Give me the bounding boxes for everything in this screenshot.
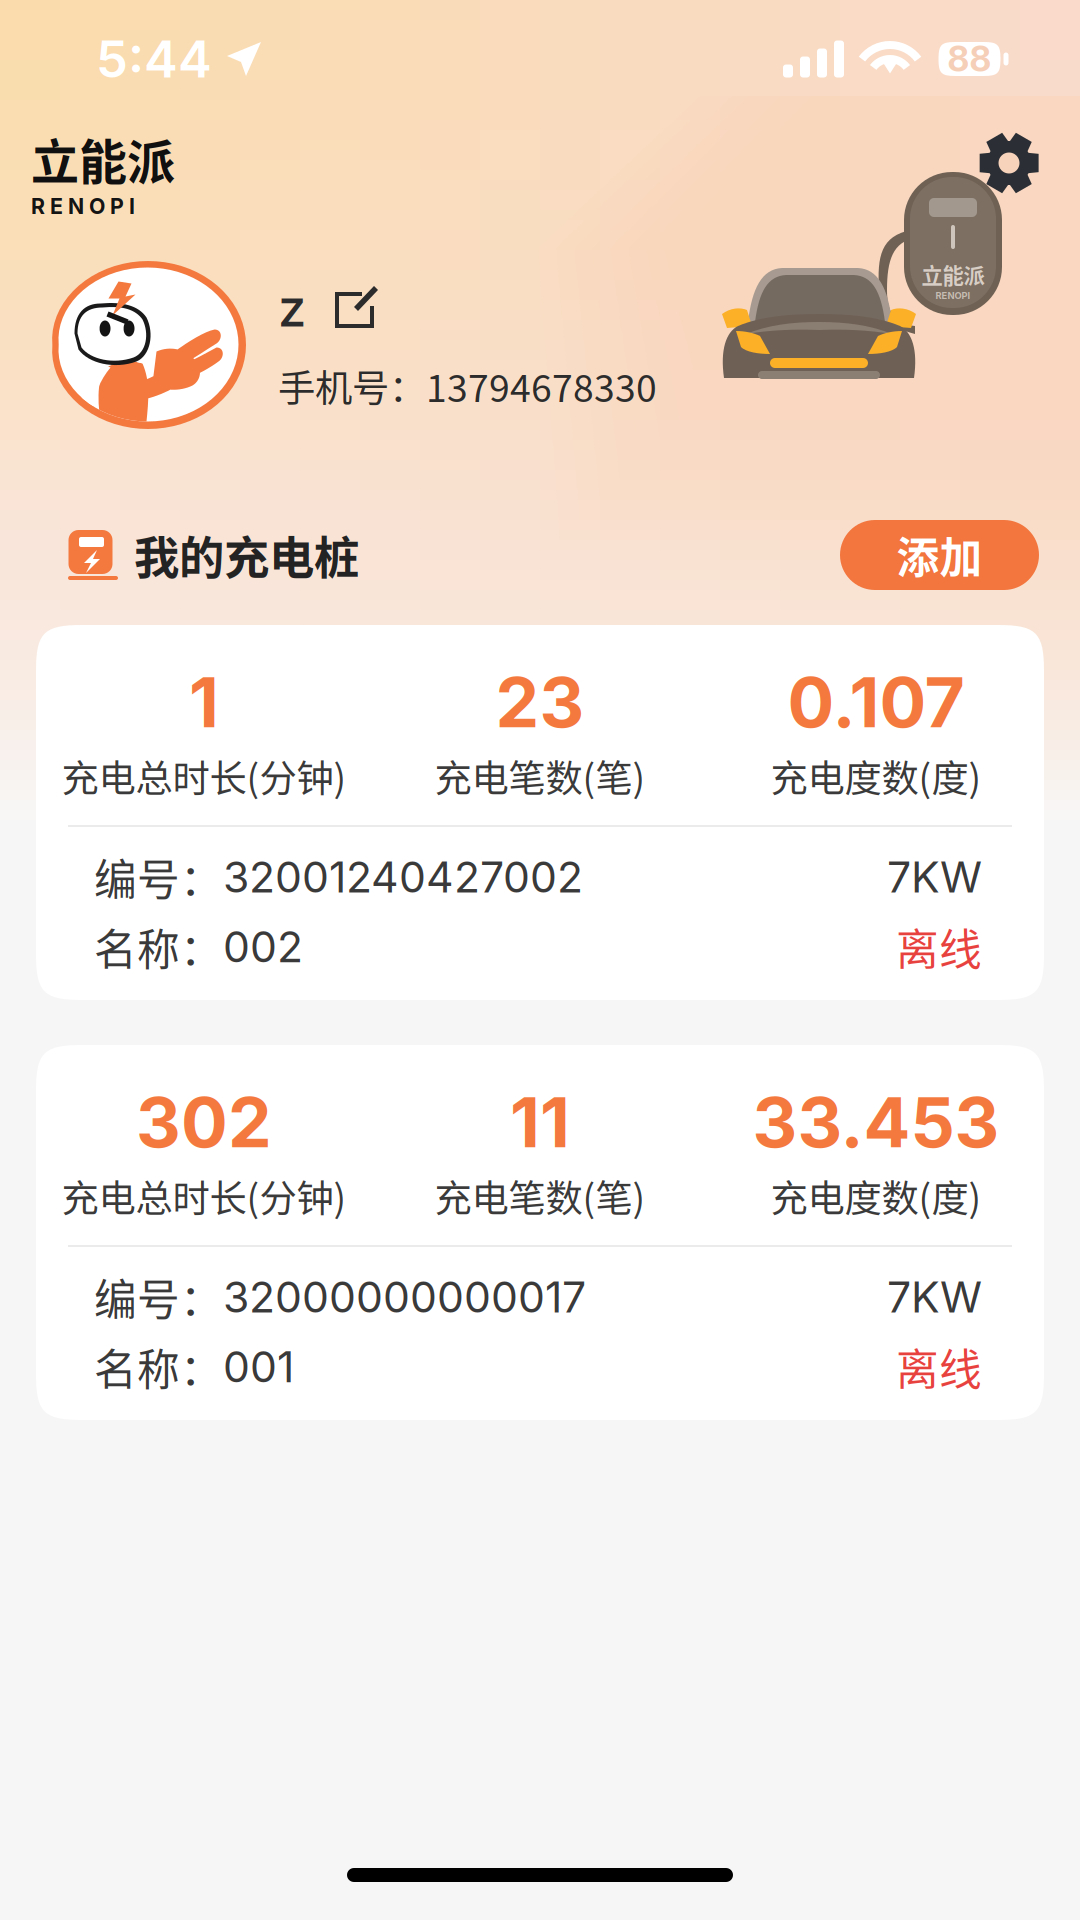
button[interactable]: Edit name — [332, 282, 384, 334]
staticText: 充电总时长(分钟) — [61, 749, 346, 803]
staticText: 名称： — [94, 1336, 223, 1398]
staticText: 7KW — [887, 851, 982, 903]
staticText: 充电度数(度) — [770, 749, 981, 803]
staticText: z — [278, 277, 306, 339]
button[interactable]: 添加 — [840, 520, 1039, 590]
staticText: 5:44 — [96, 28, 212, 90]
staticText: 离线 — [896, 916, 982, 978]
staticText: 名称： — [94, 916, 223, 978]
staticText: 002 — [223, 921, 303, 972]
staticText: 33.453 — [752, 1080, 999, 1164]
staticText: 302 — [136, 1080, 272, 1164]
staticText: 编号： — [94, 846, 223, 908]
staticText: 88 — [947, 38, 991, 80]
staticText: 32000000000017 — [223, 1271, 586, 1323]
staticText: 11 — [510, 1080, 570, 1164]
staticText: 32001240427002 — [223, 851, 583, 903]
staticText: 手机号：13794678330 — [278, 359, 657, 413]
staticText: R E N O P I — [31, 193, 135, 219]
staticText: 7KW — [887, 1271, 982, 1323]
staticText: 离线 — [896, 1336, 982, 1398]
staticText: RENOPI — [935, 290, 970, 301]
staticText: 我的充电桩 — [134, 522, 359, 588]
staticText: 编号： — [94, 1266, 223, 1328]
staticText: 充电笔数(笔) — [434, 1169, 645, 1223]
staticText: 1 — [189, 660, 219, 744]
staticText: 0.107 — [787, 660, 964, 744]
staticText: 充电度数(度) — [770, 1169, 981, 1223]
staticText: 充电笔数(笔) — [434, 749, 645, 803]
staticText: 充电总时长(分钟) — [61, 1169, 346, 1223]
staticText: 立能派 — [921, 259, 984, 290]
staticText: 立能派 — [31, 124, 175, 193]
button[interactable]: Settings — [964, 118, 1054, 208]
staticText: 23 — [495, 660, 584, 744]
staticText: 001 — [223, 1341, 294, 1392]
staticText: 添加 — [896, 524, 982, 586]
